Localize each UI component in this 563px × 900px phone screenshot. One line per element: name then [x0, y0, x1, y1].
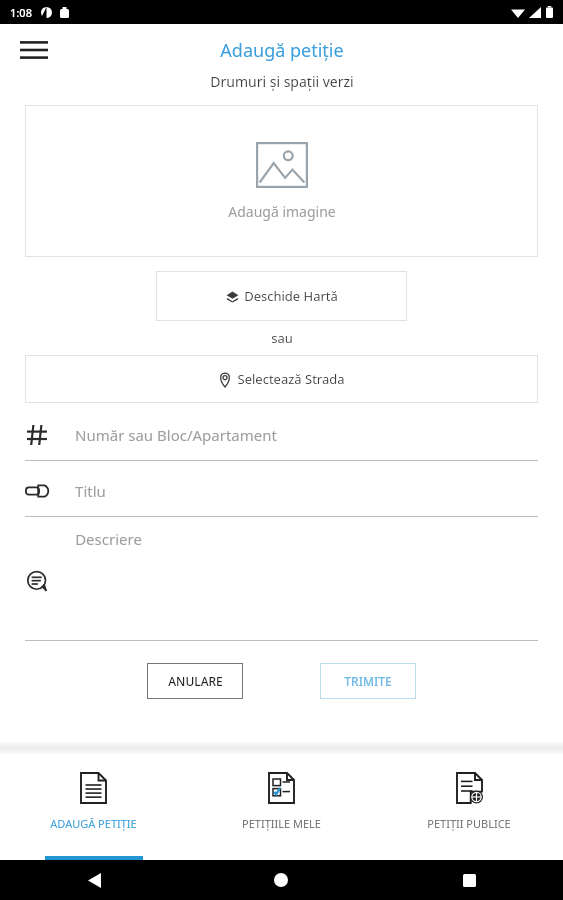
staticText: ADAUGĂ PETIȚIE [50, 816, 137, 831]
staticText: Număr sau Bloc/Apartament [75, 425, 277, 445]
button[interactable]: TRIMITE [320, 663, 416, 699]
button[interactable]: Home [266, 865, 296, 895]
button[interactable]: ANULARE [147, 663, 243, 699]
button[interactable]: Număr sau Bloc/Apartament [0, 417, 563, 461]
staticText: 1:08 [10, 5, 32, 20]
staticText: ANULARE [168, 673, 223, 689]
button[interactable]: Deschide Hartă [156, 271, 407, 321]
button[interactable]: Recents [454, 865, 484, 895]
button[interactable]: Descriere [0, 529, 563, 641]
staticText: sau [271, 329, 293, 347]
button[interactable]: Titlu [0, 473, 563, 517]
staticText: Descriere [75, 529, 142, 549]
staticText: TRIMITE [344, 673, 392, 689]
staticText: Titlu [75, 481, 106, 501]
button[interactable]: ADAUGĂ PETIȚIE [0, 755, 187, 856]
button[interactable]: Adaugă imagine [25, 105, 538, 257]
staticText: PETIȚII PUBLICE [427, 816, 511, 831]
staticText: Adaugă petiție [220, 38, 344, 63]
staticText: Adaugă imagine [228, 202, 336, 221]
staticText: Drumuri și spații verzi [210, 72, 354, 91]
staticText: Selectează Strada [237, 370, 345, 388]
staticText: Deschide Hartă [244, 287, 338, 305]
staticText: PETIȚIILE MELE [242, 816, 321, 831]
button[interactable]: Back [79, 865, 109, 895]
button[interactable]: PETIȚII PUBLICE [375, 755, 563, 856]
button[interactable]: Menu [12, 28, 56, 72]
button[interactable]: Selectează Strada [25, 355, 538, 403]
button[interactable]: PETIȚIILE MELE [187, 755, 375, 856]
